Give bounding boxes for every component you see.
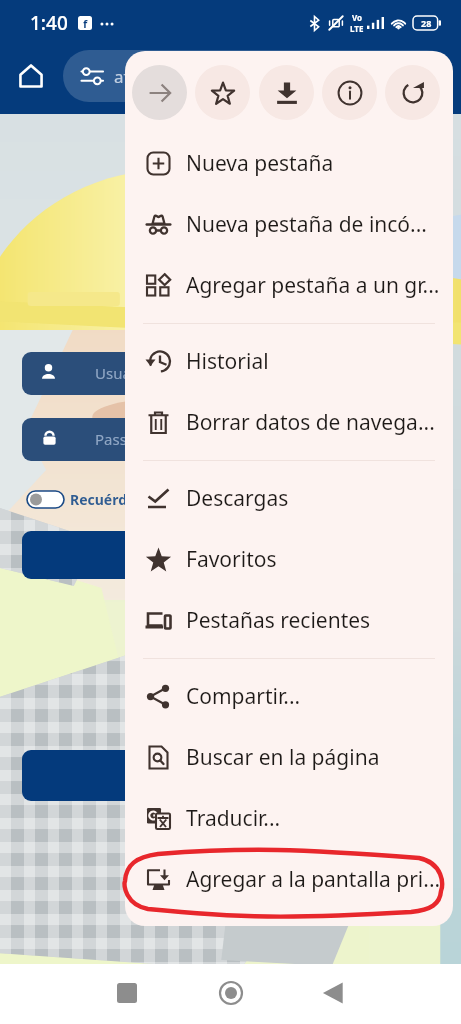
button[interactable]: Nueva pestaña (125, 133, 453, 194)
button[interactable]: Historial (125, 331, 453, 392)
staticText: Favoritos (186, 545, 277, 574)
staticText: Compartir... (186, 682, 301, 711)
button[interactable]: Descargas (125, 468, 453, 529)
button[interactable]: Back (311, 970, 356, 1015)
button[interactable]: Download (259, 65, 314, 120)
staticText: Nueva pestaña de incó... (186, 210, 427, 239)
staticText: afeconsa.com (114, 65, 225, 88)
staticText: Historial (186, 347, 269, 376)
staticText: LTE (350, 23, 364, 34)
button[interactable]: Buscar en la página (125, 727, 453, 788)
button[interactable]: Forward (132, 65, 187, 120)
button[interactable]: Home (208, 970, 253, 1015)
staticText: Recuérdame (70, 490, 158, 509)
button[interactable]: Bookmark (195, 65, 250, 120)
staticText: Descargas (186, 484, 289, 513)
button[interactable]: Borrar datos de navega... (125, 392, 453, 453)
button[interactable]: Nueva pestaña de incó... (125, 194, 453, 255)
staticText: Password (95, 429, 163, 449)
staticText: Vo (352, 12, 363, 23)
button[interactable]: Compartir... (125, 666, 453, 727)
staticText: 1:40 (30, 10, 68, 36)
button[interactable]: Favoritos (125, 529, 453, 590)
staticText: f (83, 16, 88, 30)
staticText: Borrar datos de navega... (186, 408, 435, 437)
staticText: Usuario (95, 363, 150, 383)
button[interactable]: afeconsa.com (63, 50, 453, 102)
button[interactable]: Pestañas recientes (125, 590, 453, 651)
staticText: Nueva pestaña (186, 149, 334, 178)
staticText: 28 (421, 17, 432, 29)
staticText: Buscar en la página (186, 743, 380, 772)
button[interactable]: Agregar a la pantalla pri... (125, 849, 453, 910)
button[interactable]: Traducir... (125, 788, 453, 849)
staticText: Pestañas recientes (186, 606, 371, 635)
button[interactable]: Reload (385, 65, 440, 120)
staticText: Agregar a la pantalla pri... (186, 865, 441, 894)
staticText: Traducir... (186, 804, 281, 833)
button[interactable]: Recents (104, 970, 149, 1015)
staticText: Agregar pestaña a un gr... (186, 271, 440, 300)
button[interactable]: Agregar pestaña a un gr... (125, 255, 453, 316)
button[interactable]: Home (10, 55, 52, 97)
button[interactable]: Page info (322, 65, 377, 120)
